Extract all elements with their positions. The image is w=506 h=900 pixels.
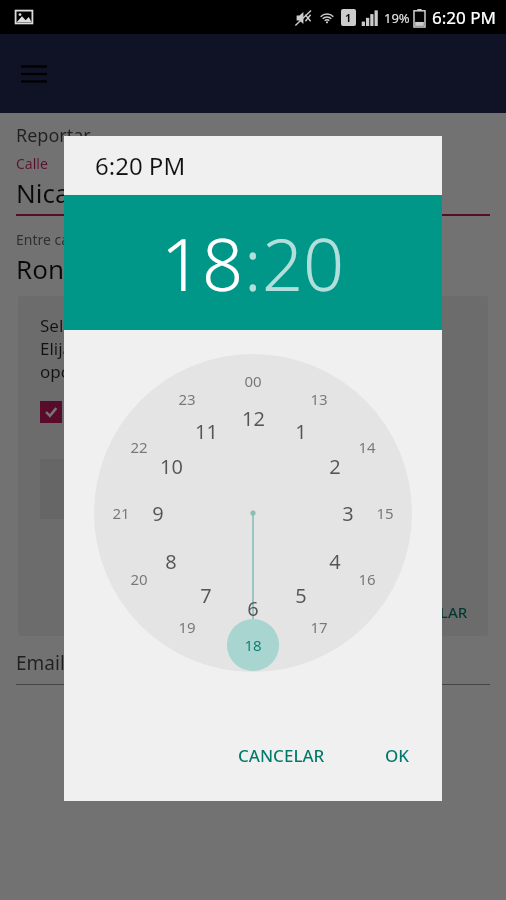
button[interactable]: 12 bbox=[236, 401, 270, 435]
button[interactable]: Menu bbox=[14, 54, 54, 94]
button[interactable]: 20 bbox=[262, 214, 345, 312]
staticText: Email bbox=[16, 650, 65, 676]
staticText: 6:20 PM bbox=[95, 149, 186, 182]
staticText: 20 bbox=[130, 569, 148, 589]
staticText: 6:20 PM bbox=[432, 6, 496, 29]
button[interactable]: 5 bbox=[284, 578, 318, 612]
button[interactable]: 10 bbox=[154, 449, 188, 483]
button[interactable]: 21 bbox=[104, 496, 138, 530]
staticText: 9 bbox=[152, 500, 164, 527]
button[interactable]: 20 bbox=[122, 562, 156, 596]
staticText: 5 bbox=[295, 582, 307, 609]
staticText: 21 bbox=[112, 503, 130, 523]
staticText: 00 bbox=[244, 371, 262, 391]
button[interactable]: 15 bbox=[368, 496, 402, 530]
button[interactable]: 3 bbox=[331, 496, 365, 530]
button[interactable]: 9 bbox=[141, 496, 175, 530]
staticText: CANCELAR bbox=[238, 744, 325, 767]
button[interactable]: 23 bbox=[170, 382, 204, 416]
staticText: 6 bbox=[247, 595, 259, 622]
staticText: 11 bbox=[195, 418, 218, 445]
staticText: 16 bbox=[358, 569, 376, 589]
button[interactable]: 00 bbox=[236, 364, 270, 398]
button[interactable]: 4 bbox=[318, 544, 352, 578]
button[interactable]: CANCELAR bbox=[226, 736, 337, 775]
staticText: 19 bbox=[178, 617, 196, 637]
staticText: 7 bbox=[200, 582, 212, 609]
button[interactable]: 17 bbox=[302, 610, 336, 644]
staticText: 18 bbox=[244, 635, 262, 655]
staticText: Calle bbox=[16, 154, 48, 173]
staticText: Elija la bbox=[40, 337, 91, 360]
button[interactable]: 18 bbox=[161, 214, 244, 312]
button[interactable]: 8 bbox=[154, 544, 188, 578]
staticText: 8 bbox=[165, 548, 177, 575]
staticText: 23 bbox=[178, 389, 196, 409]
staticText: : bbox=[244, 214, 262, 312]
staticText: Nicaragua bbox=[16, 175, 141, 210]
button[interactable]: 16 bbox=[350, 562, 384, 596]
button[interactable]: 11 bbox=[189, 414, 223, 448]
button[interactable]: 2 bbox=[318, 449, 352, 483]
staticText: 10 bbox=[160, 453, 183, 480]
staticText: Ronda bbox=[16, 251, 95, 286]
button[interactable]: 6 bbox=[236, 591, 270, 625]
staticText: OK bbox=[385, 744, 410, 767]
staticText: CANCELAR bbox=[391, 602, 468, 622]
staticText: 1 bbox=[295, 418, 307, 445]
staticText: 19% bbox=[384, 9, 410, 27]
button[interactable]: 1 bbox=[284, 414, 318, 448]
staticText: Entre calles bbox=[16, 230, 91, 249]
button[interactable]: 7 bbox=[189, 578, 223, 612]
staticText: 1 bbox=[345, 10, 352, 25]
staticText: 4 bbox=[329, 548, 341, 575]
button[interactable]: 14 bbox=[350, 430, 384, 464]
button[interactable]: 13 bbox=[302, 382, 336, 416]
staticText: opción bbox=[40, 360, 95, 383]
staticText: 12 bbox=[242, 405, 265, 432]
button[interactable]: 18 bbox=[236, 628, 270, 662]
staticText: 15 bbox=[376, 503, 394, 523]
button[interactable]: OK bbox=[373, 736, 422, 775]
staticText: 13 bbox=[310, 389, 328, 409]
staticText: 3 bbox=[342, 500, 354, 527]
staticText: 2 bbox=[329, 453, 341, 480]
staticText: 17 bbox=[310, 617, 328, 637]
staticText: Seleccione bbox=[40, 314, 124, 337]
staticText: Reportar bbox=[16, 123, 91, 148]
staticText: 14 bbox=[358, 437, 376, 457]
button[interactable]: 22 bbox=[122, 430, 156, 464]
staticText: 22 bbox=[130, 437, 148, 457]
button[interactable]: 19 bbox=[170, 610, 204, 644]
